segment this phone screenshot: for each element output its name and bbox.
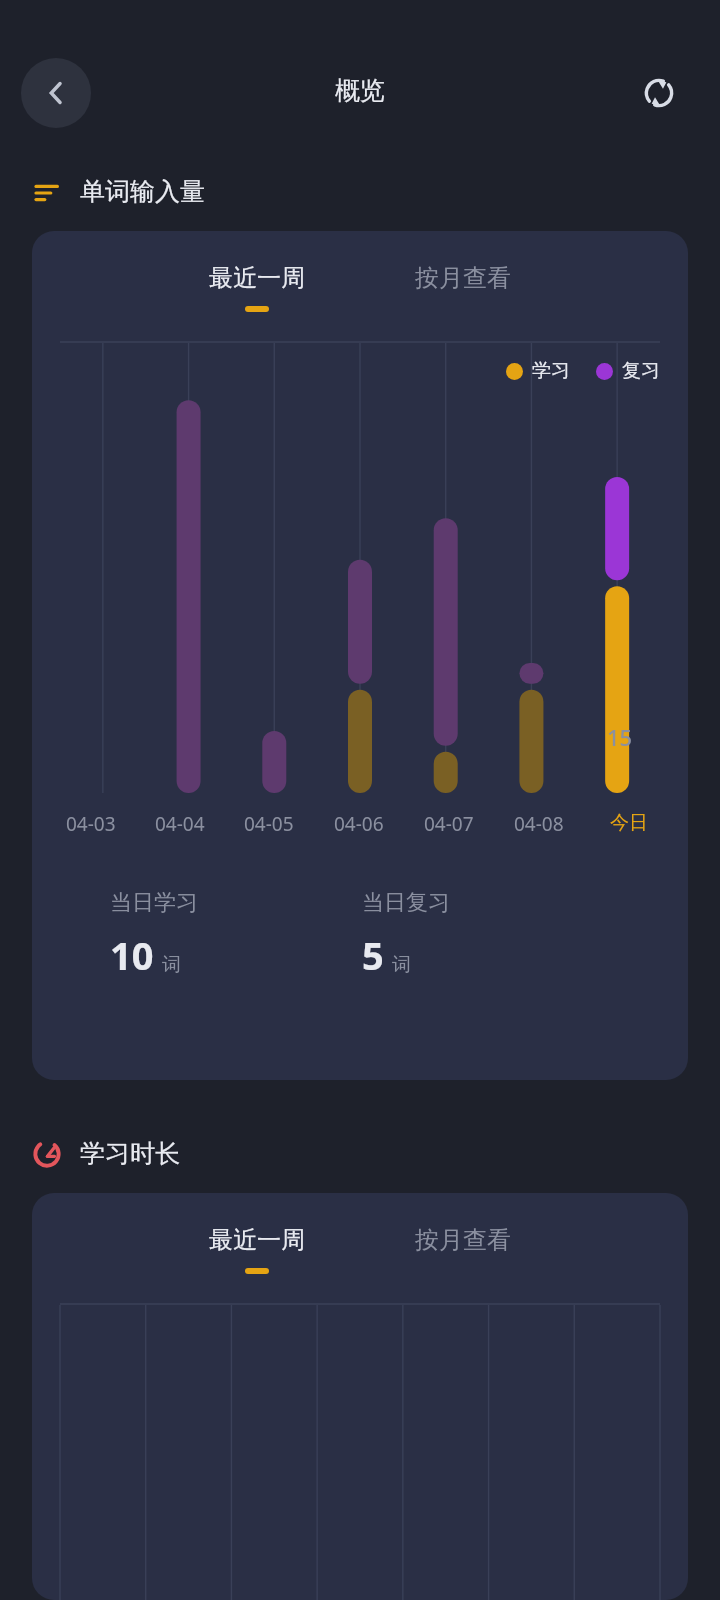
- staticText: 最近一周: [209, 1225, 305, 1255]
- staticText: 概览: [335, 75, 385, 106]
- staticText: 5: [362, 929, 384, 981]
- staticText: 04-04: [155, 811, 205, 837]
- button[interactable]: Refresh: [628, 62, 690, 124]
- staticText: 04-06: [334, 811, 384, 837]
- staticText: 04-07: [424, 811, 474, 837]
- staticText: 按月查看: [415, 1225, 511, 1255]
- staticText: 04-08: [514, 811, 564, 837]
- staticText: 当日学习: [110, 889, 198, 917]
- staticText: 学习: [532, 359, 570, 383]
- staticText: 最近一周: [209, 263, 305, 293]
- staticText: 复习: [622, 359, 660, 383]
- staticText: 04-03: [66, 811, 116, 837]
- button[interactable]: Back: [21, 58, 91, 128]
- button[interactable]: 最近一周: [167, 1225, 347, 1274]
- button[interactable]: 最近一周: [167, 263, 347, 312]
- staticText: 单词输入量: [80, 176, 205, 207]
- staticText: 15: [607, 722, 633, 752]
- staticText: 04-05: [244, 811, 294, 837]
- button[interactable]: 按月查看: [373, 1225, 553, 1255]
- staticText: 词: [392, 953, 411, 977]
- staticText: 10: [110, 929, 154, 981]
- staticText: 学习时长: [80, 1138, 180, 1169]
- staticText: 当日复习: [362, 889, 450, 917]
- staticText: 词: [162, 953, 181, 977]
- button[interactable]: 按月查看: [373, 263, 553, 293]
- staticText: 今日: [610, 811, 648, 835]
- staticText: 按月查看: [415, 263, 511, 293]
